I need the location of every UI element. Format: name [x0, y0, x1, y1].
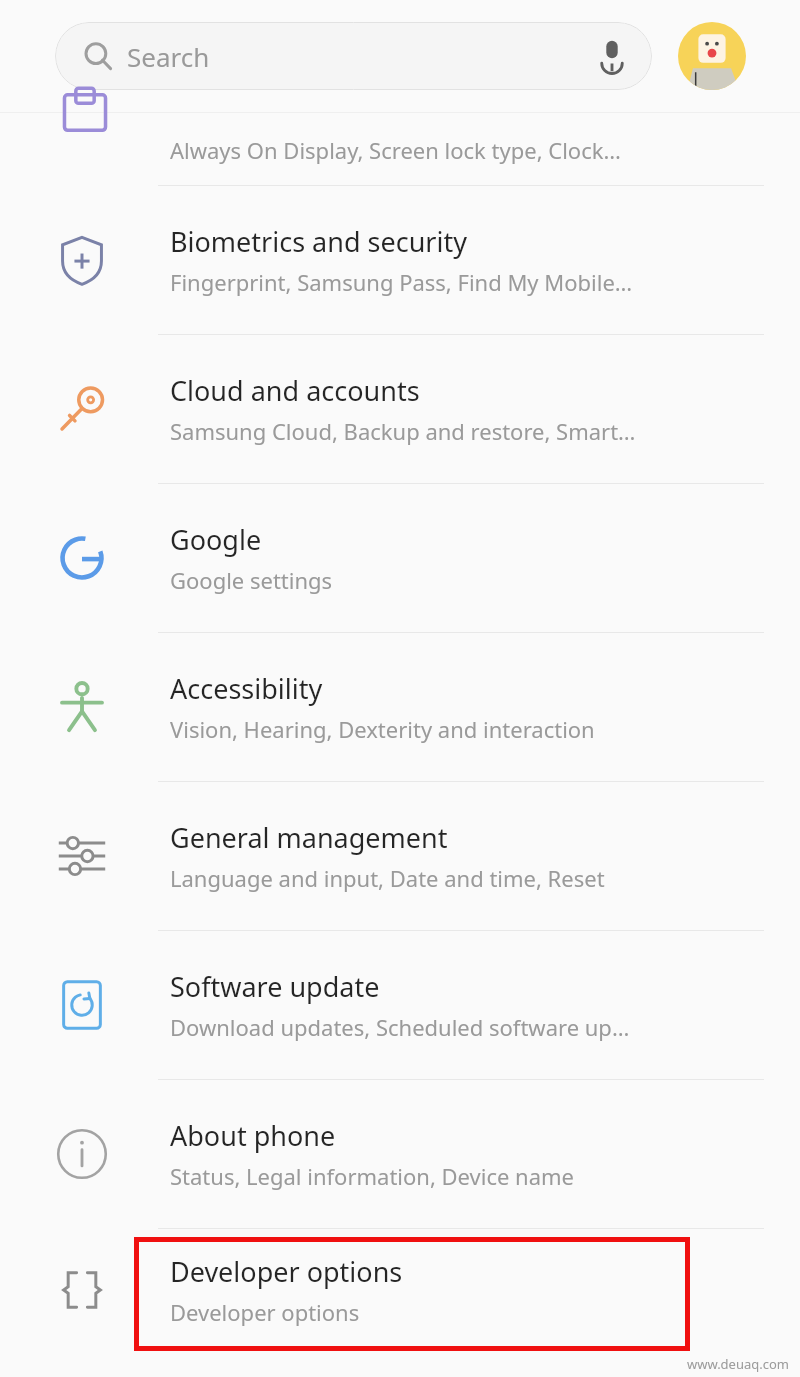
staticText: General management — [170, 819, 448, 856]
button[interactable]: About phone — [0, 1080, 800, 1228]
staticText: Always On Display, Screen lock type, Clo… — [170, 135, 621, 165]
staticText: www.deuaq.com — [687, 1355, 790, 1373]
button[interactable]: Search — [55, 22, 652, 90]
staticText: Google — [170, 521, 262, 558]
staticText: Developer options — [170, 1253, 403, 1290]
button[interactable]: Voice search — [584, 28, 640, 84]
button[interactable]: General management — [0, 782, 800, 930]
staticText: Language and input, Date and time, Reset — [170, 863, 605, 893]
button[interactable]: Software update — [0, 931, 800, 1079]
staticText: Download updates, Scheduled software up… — [170, 1012, 630, 1042]
button[interactable]: Accessibility — [0, 633, 800, 781]
button[interactable]: Developer options — [0, 1229, 800, 1351]
staticText: Accessibility — [170, 670, 323, 707]
staticText: Vision, Hearing, Dexterity and interacti… — [170, 714, 595, 744]
staticText: Status, Legal information, Device name — [170, 1161, 575, 1191]
button[interactable]: Biometrics and security — [0, 186, 800, 334]
staticText: About phone — [170, 1117, 336, 1154]
staticText: Search — [127, 39, 210, 74]
button[interactable]: Cloud and accounts — [0, 335, 800, 483]
staticText: Biometrics and security — [170, 223, 467, 260]
staticText: Samsung Cloud, Backup and restore, Smart… — [170, 416, 636, 446]
staticText: Google settings — [170, 565, 333, 595]
button[interactable]: Google — [0, 484, 800, 632]
staticText: Developer options — [170, 1297, 360, 1327]
staticText: Fingerprint, Samsung Pass, Find My Mobil… — [170, 267, 633, 297]
button[interactable]: Always On Display, Screen lock type, Clo… — [0, 113, 800, 185]
button[interactable]: Account — [678, 22, 746, 90]
staticText: Cloud and accounts — [170, 372, 420, 409]
staticText: Software update — [170, 968, 380, 1005]
